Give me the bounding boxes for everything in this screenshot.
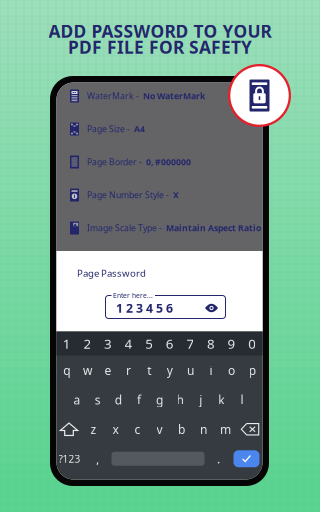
- staticText: p: [249, 362, 256, 378]
- button[interactable]: 6: [159, 331, 180, 355]
- button[interactable]: 9: [221, 331, 242, 355]
- staticText: X: [173, 189, 179, 201]
- button[interactable]: p: [242, 355, 262, 385]
- button[interactable]: n: [192, 414, 214, 444]
- button[interactable]: w: [77, 355, 98, 385]
- button[interactable]: x: [104, 414, 126, 444]
- staticText: ?123: [58, 452, 80, 465]
- button[interactable]: k: [211, 385, 232, 414]
- staticText: g: [156, 392, 163, 408]
- button[interactable]: Page Number Style -: [56, 178, 262, 211]
- button[interactable]: 5: [139, 331, 159, 355]
- staticText: j: [199, 392, 202, 408]
- staticText: 7: [186, 334, 194, 353]
- staticText: m: [220, 421, 231, 437]
- button[interactable]: g: [149, 385, 170, 414]
- button[interactable]: t: [139, 355, 159, 385]
- staticText: .: [217, 451, 220, 467]
- staticText: z: [90, 421, 96, 437]
- button[interactable]: 1: [56, 331, 77, 355]
- button[interactable]: Enter: [230, 444, 262, 473]
- staticText: a: [74, 392, 81, 408]
- button[interactable]: m: [214, 414, 236, 444]
- staticText: ,: [96, 451, 99, 467]
- staticText: e: [104, 362, 111, 378]
- button[interactable]: 2: [77, 331, 98, 355]
- staticText: i: [209, 362, 212, 378]
- staticText: s: [95, 392, 101, 408]
- button[interactable]: v: [148, 414, 170, 444]
- staticText: 0: [248, 334, 256, 353]
- staticText: Page Size -: [87, 123, 134, 135]
- staticText: WaterMark -: [87, 90, 143, 102]
- button[interactable]: u: [180, 355, 201, 385]
- staticText: 1 2 3 4 5 6: [116, 300, 173, 316]
- staticText: f: [137, 392, 141, 408]
- staticText: t: [147, 362, 151, 378]
- staticText: d: [115, 392, 122, 408]
- staticText: 9: [228, 334, 236, 353]
- staticText: 0, #000000: [146, 156, 191, 168]
- staticText: v: [156, 421, 162, 437]
- staticText: Enter here...: [113, 291, 153, 300]
- staticText: l: [240, 392, 243, 408]
- button[interactable]: Page Border -: [56, 145, 262, 178]
- staticText: Page Password: [77, 266, 146, 280]
- button[interactable]: l: [232, 385, 252, 414]
- button[interactable]: Backspace: [236, 414, 263, 444]
- button[interactable]: o: [221, 355, 242, 385]
- button[interactable]: Page Size -: [56, 112, 262, 145]
- button[interactable]: 3: [98, 331, 118, 355]
- button[interactable]: r: [118, 355, 139, 385]
- button[interactable]: ,: [86, 444, 108, 473]
- staticText: ADD PASSWORD TO YOUR: [48, 19, 271, 42]
- button[interactable]: f: [129, 385, 149, 414]
- button[interactable]: ?123: [56, 444, 86, 473]
- staticText: r: [126, 362, 131, 378]
- button[interactable]: s: [87, 385, 108, 414]
- staticText: PDF FILE FOR SAFETY: [68, 35, 252, 58]
- staticText: Image Scale Type -: [87, 222, 166, 234]
- staticText: 1: [63, 334, 71, 353]
- button[interactable]: Space: [108, 444, 207, 473]
- button[interactable]: y: [159, 355, 180, 385]
- staticText: u: [187, 362, 194, 378]
- button[interactable]: j: [190, 385, 211, 414]
- button[interactable]: .: [207, 444, 229, 473]
- button[interactable]: 8: [201, 331, 221, 355]
- button[interactable]: q: [56, 355, 77, 385]
- button[interactable]: d: [108, 385, 129, 414]
- staticText: x: [112, 421, 118, 437]
- staticText: 2: [83, 334, 91, 353]
- button[interactable]: Shift: [55, 414, 82, 444]
- staticText: 6: [166, 334, 174, 353]
- staticText: w: [83, 362, 92, 378]
- staticText: n: [200, 421, 207, 437]
- staticText: No WaterMark: [143, 90, 205, 102]
- staticText: h: [177, 392, 184, 408]
- button[interactable]: c: [126, 414, 148, 444]
- button[interactable]: i: [201, 355, 221, 385]
- button[interactable]: 4: [118, 331, 139, 355]
- staticText: A4: [134, 123, 145, 135]
- button[interactable]: a: [67, 385, 87, 414]
- button[interactable]: 1 2 3 4 5 6: [105, 295, 225, 318]
- staticText: 3: [104, 334, 112, 353]
- button[interactable]: e: [98, 355, 118, 385]
- button[interactable]: 0: [242, 331, 262, 355]
- button[interactable]: h: [170, 385, 190, 414]
- button[interactable]: b: [170, 414, 192, 444]
- staticText: Maintain Aspect Ratio: [166, 222, 261, 234]
- staticText: Page Number Style -: [87, 189, 173, 201]
- staticText: b: [178, 421, 185, 437]
- staticText: y: [167, 362, 173, 378]
- staticText: 5: [145, 334, 153, 353]
- staticText: k: [218, 392, 224, 408]
- button[interactable]: WaterMark -: [56, 79, 262, 112]
- button[interactable]: Image Scale Type -: [56, 211, 262, 244]
- staticText: 4: [125, 334, 133, 353]
- button[interactable]: 7: [180, 331, 201, 355]
- staticText: q: [63, 362, 70, 378]
- button[interactable]: z: [82, 414, 104, 444]
- staticText: 8: [207, 334, 215, 353]
